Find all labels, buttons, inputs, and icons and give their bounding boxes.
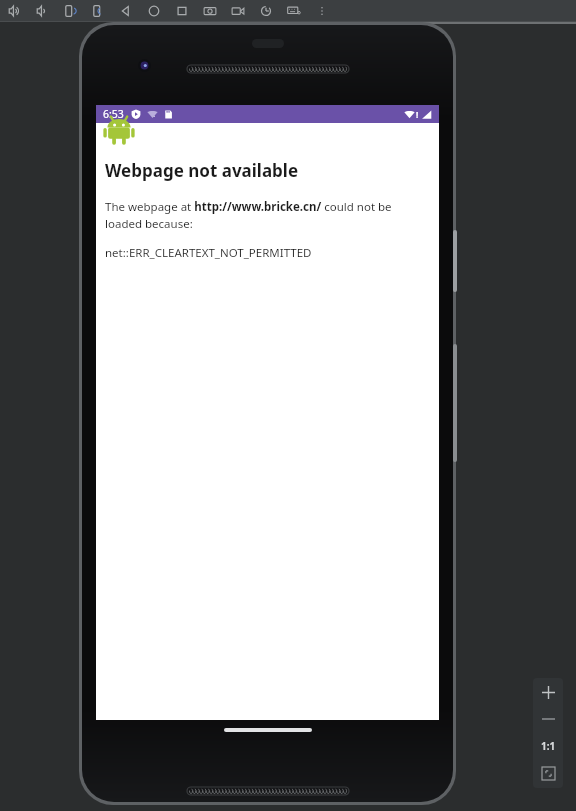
button[interactable]: Volume up — [0, 0, 28, 22]
staticText: 6:53 — [103, 107, 124, 121]
button[interactable]: Home — [140, 0, 168, 22]
button[interactable]: Rotate device — [252, 0, 280, 22]
staticText: 1:1 — [541, 739, 556, 753]
button[interactable]: Screenshot — [196, 0, 224, 22]
button[interactable]: Volume down — [28, 0, 56, 22]
button[interactable]: Keyboard — [280, 0, 308, 22]
button[interactable]: Fit to screen — [533, 760, 563, 786]
button[interactable]: Zoom out — [533, 706, 563, 732]
button[interactable]: Rotate right — [84, 0, 112, 22]
staticText: The webpage at http://www.bricke.cn/ cou… — [105, 199, 392, 231]
staticText: Webpage not available — [105, 159, 299, 182]
button[interactable]: Back — [112, 0, 140, 22]
button[interactable]: Zoom in — [533, 678, 563, 706]
staticText: net::ERR_CLEARTEXT_NOT_PERMITTED — [105, 245, 312, 261]
button[interactable]: More — [308, 0, 336, 22]
button[interactable]: Record screen — [224, 0, 252, 22]
button[interactable]: Overview — [168, 0, 196, 22]
staticText: ! — [416, 109, 419, 120]
button[interactable]: 1:1 — [533, 732, 563, 760]
button[interactable]: Rotate left — [56, 0, 84, 22]
